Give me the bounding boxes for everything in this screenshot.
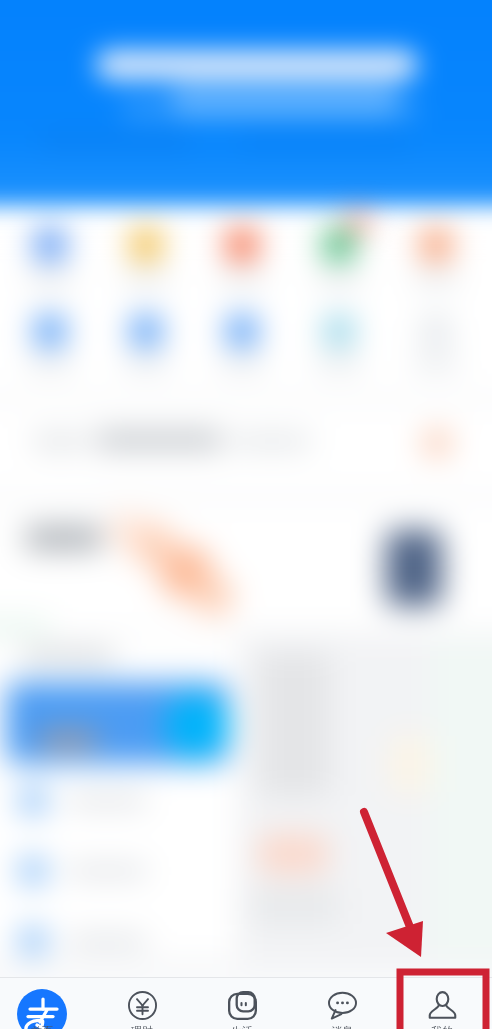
button[interactable]: 我的 [392, 977, 492, 1029]
button[interactable]: 首页 [0, 977, 92, 1029]
button[interactable]: 生活 [192, 977, 292, 1029]
button[interactable]: 理财 [92, 977, 192, 1029]
staticText: 首页 [31, 1024, 53, 1029]
staticText: 理财 [131, 1024, 153, 1029]
staticText: 生活 [231, 1024, 253, 1029]
button[interactable]: 消息 [292, 977, 392, 1029]
staticText: 消息 [331, 1024, 353, 1029]
staticText: 我的 [431, 1024, 453, 1029]
